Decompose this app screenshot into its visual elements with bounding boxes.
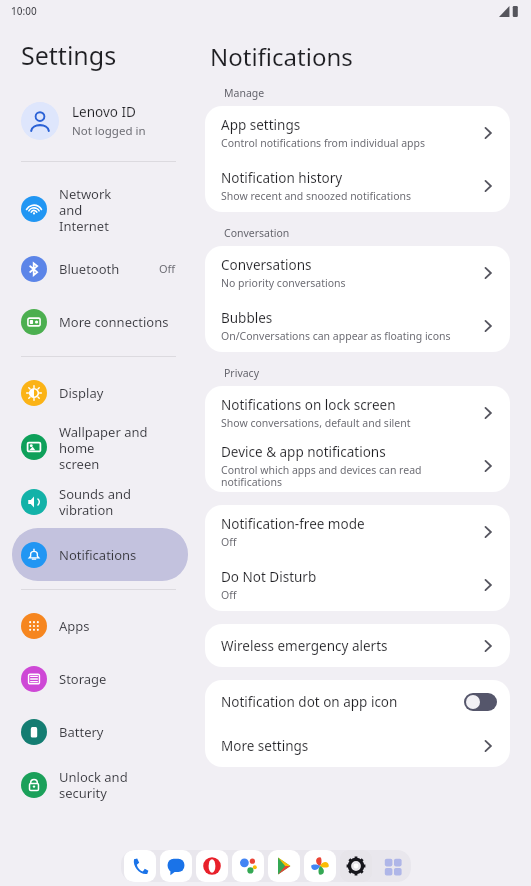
button[interactable]: Apps (12, 599, 188, 652)
button[interactable]: Notification dot toggle (464, 693, 497, 711)
button[interactable]: Bluetooth (12, 242, 188, 295)
button[interactable]: Network and Internet (12, 176, 188, 242)
button[interactable]: Wallpaper and home screen (12, 419, 188, 475)
other: Open Conversations (479, 264, 497, 282)
button[interactable]: Notification-free mode (205, 505, 510, 558)
staticText: Bluetooth (59, 260, 159, 278)
staticText: Battery (59, 723, 176, 741)
button[interactable]: Unlock and security (12, 758, 188, 811)
button[interactable]: Conversations (205, 246, 510, 299)
staticText: Notification-free mode (221, 515, 365, 533)
other: Open More settings (479, 737, 497, 755)
button[interactable]: Settings (340, 850, 372, 882)
staticText: Notifications on lock screen (221, 396, 396, 414)
button[interactable]: Wireless emergency alerts (205, 624, 510, 667)
button[interactable]: Display (12, 366, 188, 419)
button[interactable]: Do Not Disturb (205, 558, 510, 611)
staticText: Off (221, 588, 237, 602)
staticText: Control notifications from individual ap… (221, 136, 426, 150)
button[interactable]: Battery (12, 705, 188, 758)
button[interactable]: Bubbles (205, 299, 510, 352)
staticText: Bubbles (221, 309, 273, 327)
staticText: Conversation (224, 226, 290, 240)
button[interactable]: Play Store (268, 850, 300, 882)
button[interactable]: App settings (205, 106, 510, 159)
staticText: Network and Internet (59, 185, 176, 234)
staticText: Privacy (224, 366, 260, 380)
button[interactable]: Sounds and vibration (12, 475, 188, 528)
button[interactable]: Assistant (232, 850, 264, 882)
staticText: Notification dot on app icon (221, 693, 398, 711)
staticText: Apps (59, 617, 176, 635)
staticText: Do Not Disturb (221, 568, 317, 586)
staticText: Notifications (59, 546, 176, 564)
button[interactable]: Notification dot on app icon (205, 680, 510, 724)
other: Open Notification-free mode (479, 523, 497, 541)
button[interactable]: More settings (205, 724, 510, 767)
staticText: Show recent and snoozed notifications (221, 189, 412, 203)
staticText: Wallpaper and home screen (59, 423, 176, 472)
staticText: Storage (59, 670, 176, 688)
button[interactable]: Photos (304, 850, 336, 882)
other: Open App settings (479, 124, 497, 142)
button[interactable]: Notifications on lock screen (205, 386, 510, 439)
staticText: Conversations (221, 256, 312, 274)
staticText: Unlock and security (59, 768, 176, 801)
staticText: Show conversations, default and silent (221, 416, 411, 430)
staticText: Sounds and vibration (59, 485, 176, 518)
button[interactable]: Messages (160, 850, 192, 882)
button[interactable]: More connections (12, 295, 188, 348)
button[interactable]: Device & app notifications (205, 439, 510, 492)
button[interactable]: Phone (124, 850, 156, 882)
button[interactable]: Lenovo ID (0, 93, 200, 149)
other: Open Wireless emergency alerts (479, 637, 497, 655)
staticText: Display (59, 384, 176, 402)
staticText: More settings (221, 737, 309, 755)
button[interactable]: Opera (196, 850, 228, 882)
button[interactable]: Storage (12, 652, 188, 705)
staticText: Notification history (221, 169, 343, 187)
other: Open Bubbles (479, 317, 497, 335)
staticText: More connections (59, 313, 176, 331)
staticText: Off (159, 261, 176, 276)
staticText: Control which apps and devices can read … (221, 463, 471, 489)
staticText: Device & app notifications (221, 443, 386, 461)
staticText: App settings (221, 116, 301, 134)
staticText: Off (221, 535, 237, 549)
staticText: Notifications (210, 40, 353, 73)
staticText: Lenovo ID (72, 103, 136, 121)
other: Open Notification history (479, 177, 497, 195)
staticText: Manage (224, 86, 265, 100)
staticText: 10:00 (11, 4, 37, 18)
staticText: Not logged in (72, 123, 146, 139)
other: Open Do Not Disturb (479, 576, 497, 594)
staticText: Settings (21, 38, 117, 72)
button[interactable]: Notification history (205, 159, 510, 212)
other: Open Notifications on lock screen (479, 404, 497, 422)
staticText: No priority conversations (221, 276, 346, 290)
other: Open Device & app notifications (479, 457, 497, 475)
button[interactable]: Notifications (12, 528, 188, 581)
button[interactable]: All apps (376, 850, 408, 882)
staticText: Wireless emergency alerts (221, 637, 388, 655)
staticText: On/Conversations can appear as floating … (221, 329, 451, 343)
